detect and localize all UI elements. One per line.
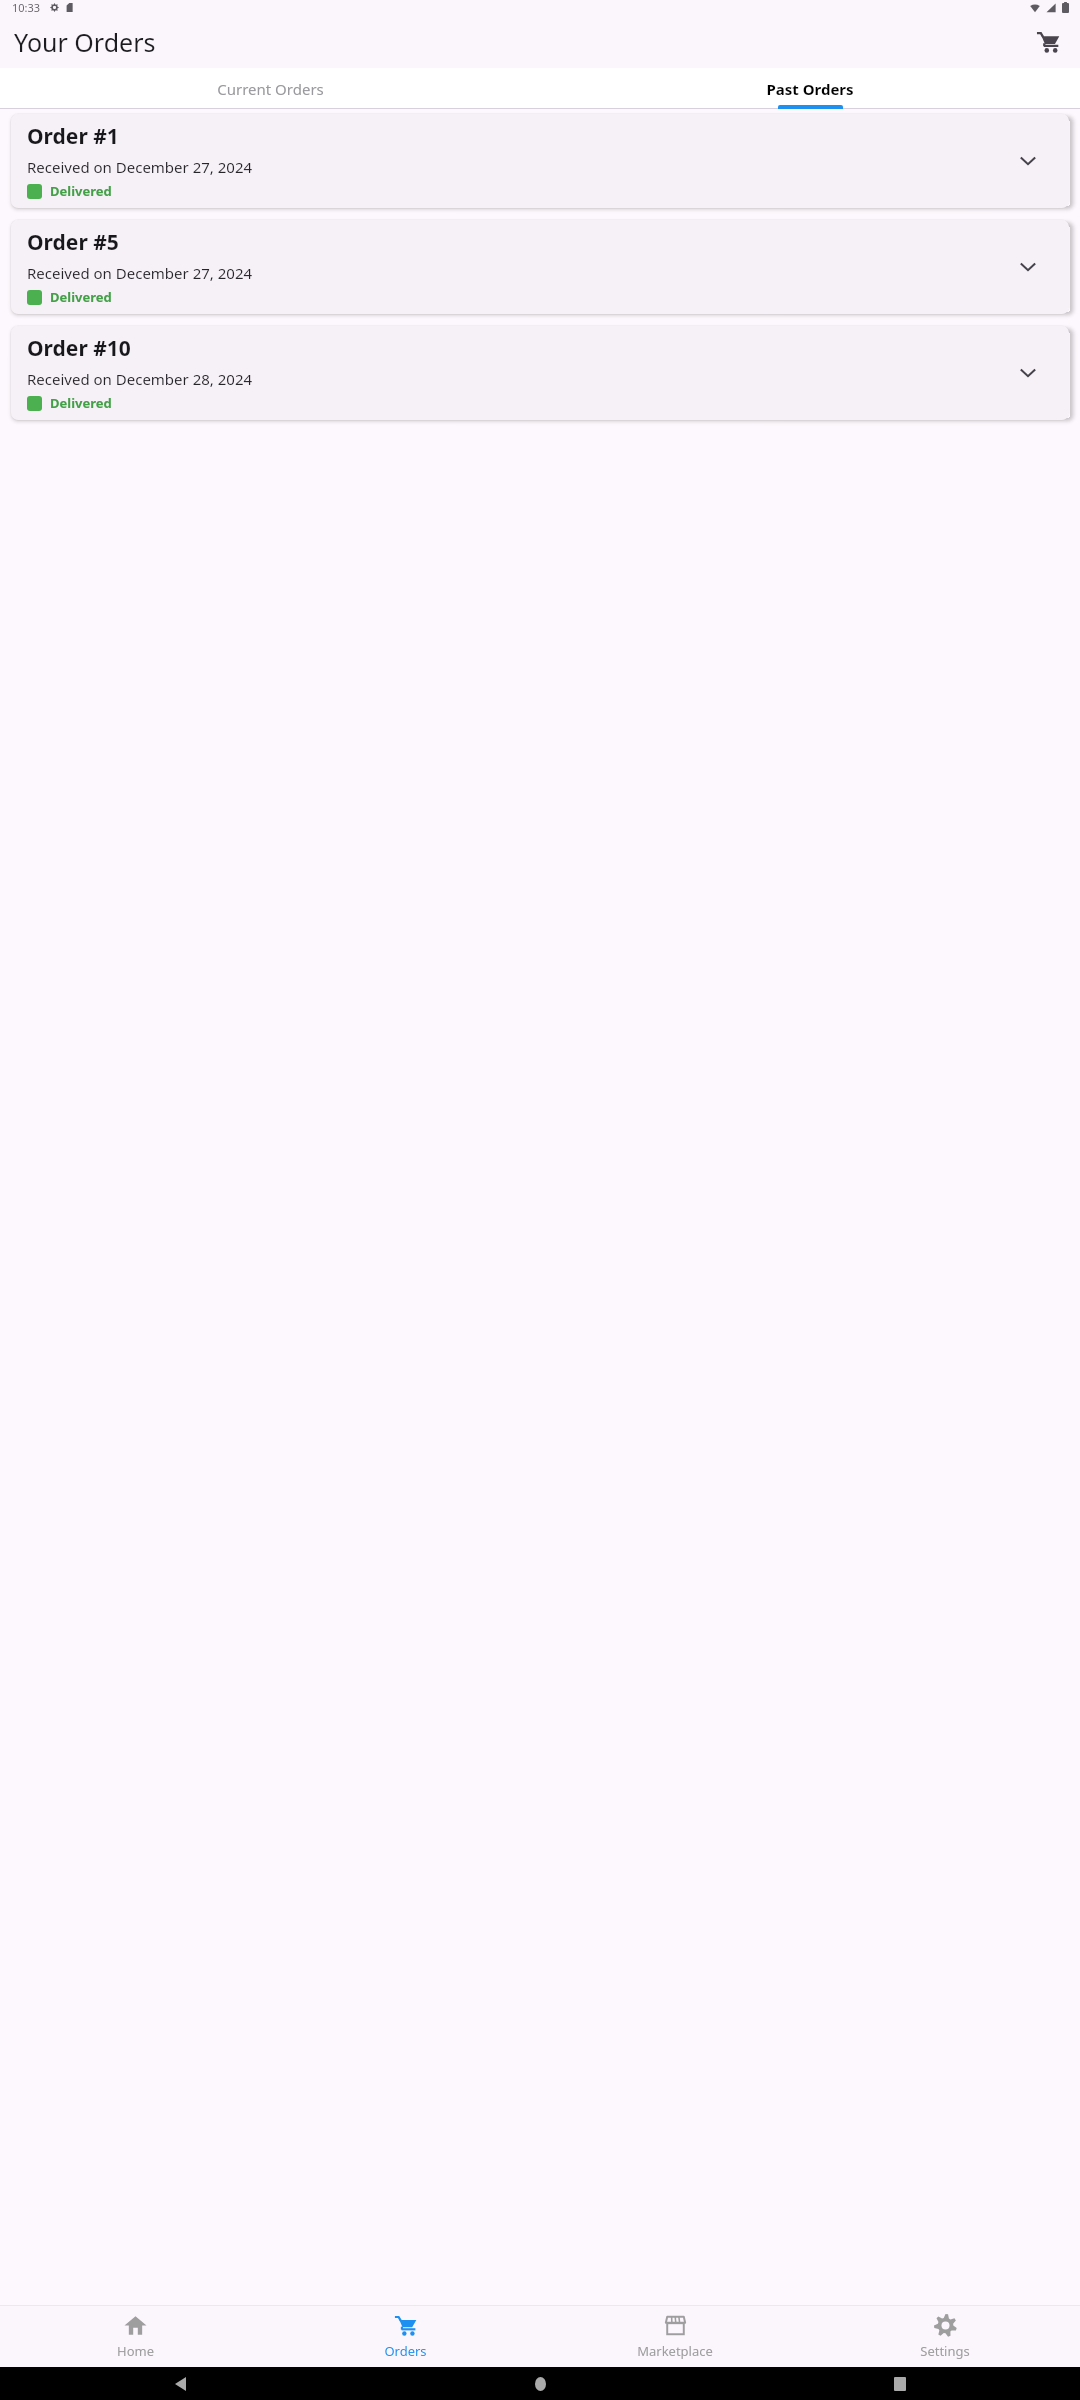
- button[interactable]: Recent apps: [720, 2367, 1080, 2400]
- staticText: Order #10: [27, 334, 131, 363]
- staticText: Delivered: [50, 182, 112, 200]
- button[interactable]: Past Orders: [540, 68, 1080, 109]
- button[interactable]: Order #5: [11, 220, 1069, 314]
- button[interactable]: Home: [360, 2367, 720, 2400]
- button[interactable]: Marketplace: [540, 2306, 810, 2367]
- staticText: Your Orders: [14, 25, 156, 59]
- button[interactable]: Expand order details: [1013, 252, 1043, 282]
- button[interactable]: Cart: [1026, 20, 1070, 64]
- button[interactable]: Home: [0, 2306, 270, 2367]
- staticText: 10:33: [12, 0, 41, 15]
- button[interactable]: Order #1: [11, 114, 1069, 208]
- staticText: Marketplace: [637, 2342, 713, 2360]
- button[interactable]: Order #10: [11, 326, 1069, 420]
- staticText: Delivered: [50, 288, 112, 306]
- button[interactable]: Settings: [810, 2306, 1080, 2367]
- staticText: Orders: [384, 2342, 427, 2360]
- button[interactable]: Expand order details: [1013, 146, 1043, 176]
- staticText: Received on December 27, 2024: [27, 157, 253, 177]
- staticText: Received on December 28, 2024: [27, 369, 253, 389]
- staticText: Current Orders: [217, 79, 324, 99]
- staticText: Order #1: [27, 122, 119, 151]
- button[interactable]: Orders: [270, 2306, 540, 2367]
- staticText: Past Orders: [766, 79, 854, 99]
- button[interactable]: Expand order details: [1013, 358, 1043, 388]
- staticText: Settings: [920, 2342, 970, 2360]
- staticText: Order #5: [27, 228, 119, 257]
- staticText: Delivered: [50, 394, 112, 412]
- staticText: Home: [117, 2342, 154, 2360]
- button[interactable]: Back: [0, 2367, 360, 2400]
- button[interactable]: Current Orders: [0, 68, 540, 109]
- staticText: Received on December 27, 2024: [27, 263, 253, 283]
